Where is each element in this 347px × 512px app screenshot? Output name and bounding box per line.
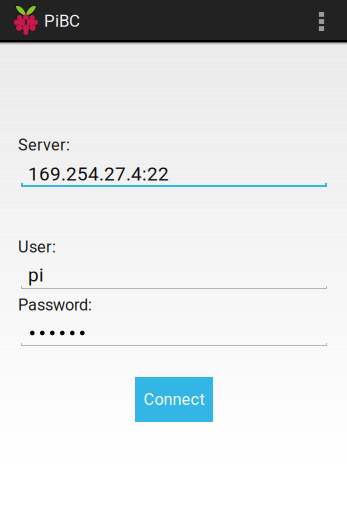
staticText: PiBC xyxy=(44,11,80,31)
staticText: 169.254.27.4:22 xyxy=(28,163,169,185)
staticText: pi xyxy=(28,264,44,286)
button[interactable]: Connect xyxy=(135,377,213,422)
staticText: Password: xyxy=(18,295,92,315)
button[interactable]: More options xyxy=(299,1,344,42)
staticText: User: xyxy=(18,237,56,257)
staticText: Connect xyxy=(143,390,204,409)
staticText: Server: xyxy=(18,135,70,155)
